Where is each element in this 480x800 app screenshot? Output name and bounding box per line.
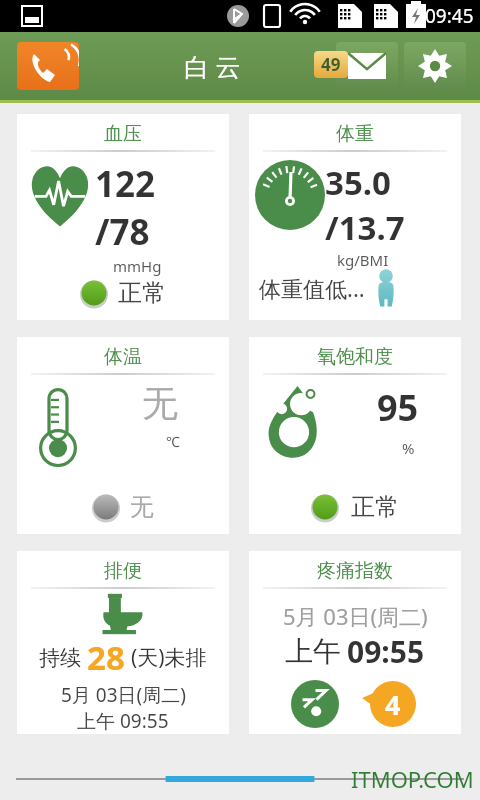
staticText: 122: [95, 160, 156, 208]
staticText: /13.7: [325, 205, 405, 250]
staticText: 5月 03日(周二): [283, 601, 428, 631]
staticText: 正常: [351, 492, 399, 522]
staticText: 排便: [104, 559, 142, 583]
staticText: 上午 09:55: [77, 708, 169, 734]
staticText: 上午: [285, 634, 341, 669]
staticText: 血压: [104, 122, 142, 146]
button[interactable]: Call: [17, 42, 79, 90]
button[interactable]: 血压: [17, 114, 231, 323]
staticText: 35.0: [325, 160, 391, 205]
staticText: 正常: [118, 278, 166, 308]
staticText: 体重值低...: [259, 273, 365, 303]
staticText: /78: [95, 208, 150, 256]
staticText: 无: [130, 492, 154, 522]
staticText: 5月 03日(周二): [61, 682, 186, 708]
staticText: 09:45: [425, 3, 474, 29]
button[interactable]: 疼痛指数: [249, 551, 463, 737]
staticText: mmHg: [113, 256, 162, 276]
staticText: 白 云: [184, 49, 241, 83]
staticText: 49: [321, 53, 341, 76]
staticText: ITMOP.COM: [351, 764, 474, 794]
staticText: kg/BMI: [337, 250, 389, 270]
button[interactable]: 排便: [17, 551, 231, 737]
staticText: ℃: [166, 432, 180, 451]
button[interactable]: 体重: [249, 114, 463, 323]
staticText: %: [402, 438, 415, 458]
staticText: 体温: [104, 345, 142, 369]
staticText: 体重: [336, 122, 374, 146]
button[interactable]: Messages: [336, 42, 398, 90]
staticText: 4: [385, 686, 401, 723]
staticText: (天)未排: [131, 643, 207, 672]
staticText: 持续: [39, 645, 81, 671]
staticText: 氧饱和度: [317, 345, 393, 369]
staticText: 28: [87, 635, 125, 680]
button[interactable]: 体温: [17, 337, 231, 537]
button[interactable]: 氧饱和度: [249, 337, 463, 537]
staticText: 95: [377, 383, 419, 432]
button[interactable]: Settings: [404, 42, 466, 90]
staticText: 疼痛指数: [317, 559, 393, 583]
staticText: 09:55: [347, 631, 425, 672]
staticText: 无: [142, 381, 178, 426]
